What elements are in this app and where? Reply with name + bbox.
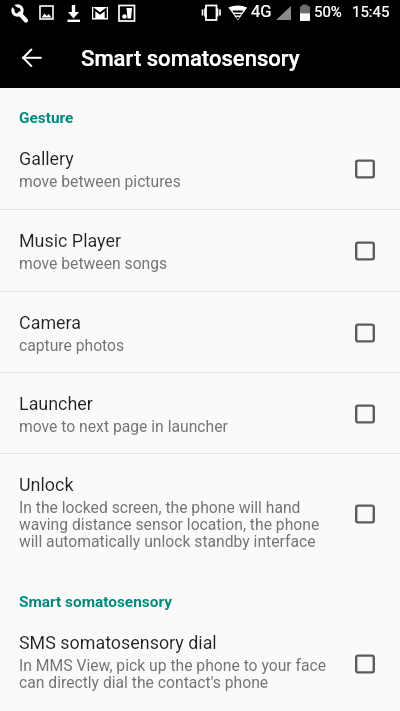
button[interactable]: Gallery — [0, 128, 400, 209]
staticText: In MMS View, pick up the phone to your f… — [19, 656, 331, 692]
staticText: Launcher — [19, 393, 331, 414]
staticText: Gesture — [19, 109, 74, 127]
staticText: 50% — [314, 3, 342, 21]
button[interactable]: Toggle Launcher — [347, 395, 383, 431]
button[interactable]: Camera — [0, 292, 400, 372]
staticText: SMS somatosensory dial — [19, 632, 331, 653]
staticText: In the locked screen, the phone will han… — [19, 498, 331, 551]
button[interactable]: Music Player — [0, 210, 400, 291]
staticText: Music Player — [19, 230, 331, 251]
button[interactable]: Toggle SMS somatosensory dial — [347, 645, 383, 681]
staticText: Smart somatosensory — [81, 45, 300, 71]
staticText: move to next page in launcher — [19, 417, 331, 435]
staticText: Unlock — [19, 474, 331, 495]
button[interactable]: Unlock — [0, 454, 400, 573]
staticText: capture photos — [19, 336, 331, 354]
staticText: Camera — [19, 312, 331, 333]
button[interactable]: SMS somatosensory dial — [0, 612, 400, 711]
staticText: Gallery — [19, 148, 331, 169]
button[interactable]: Toggle Camera — [347, 314, 383, 350]
button[interactable]: Launcher — [0, 373, 400, 453]
staticText: move between pictures — [19, 172, 331, 190]
button[interactable]: Toggle Gallery — [347, 150, 383, 186]
button[interactable]: Toggle Unlock — [347, 495, 383, 531]
staticText: Smart somatosensory — [19, 593, 172, 611]
staticText: move between songs — [19, 254, 331, 272]
staticText: 15:45 — [352, 3, 390, 21]
button[interactable]: Toggle Music Player — [347, 232, 383, 268]
button[interactable]: Back — [8, 34, 55, 81]
staticText: 4G — [251, 2, 272, 21]
